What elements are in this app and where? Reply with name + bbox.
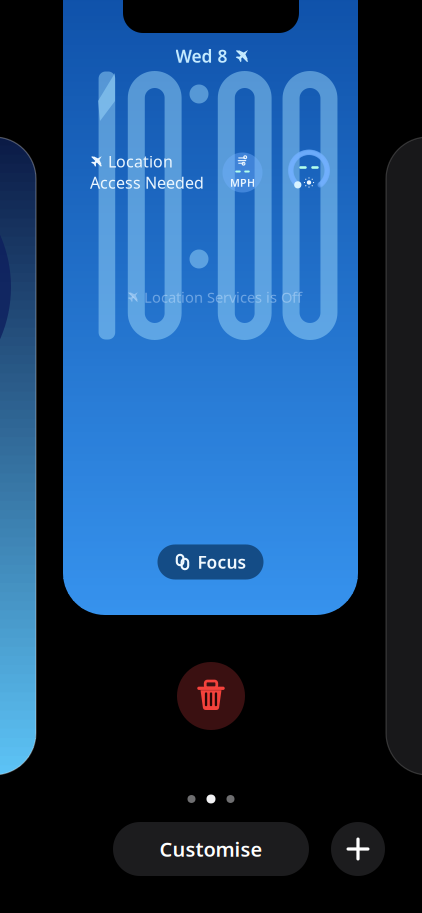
button[interactable]: Add — [331, 822, 385, 876]
staticText: Focus — [197, 550, 246, 573]
staticText: MPH — [230, 175, 255, 190]
staticText: Wed 8 — [175, 44, 227, 67]
staticText: Customise — [159, 836, 262, 862]
staticText: Location — [108, 151, 173, 172]
staticText: Location Services is Off — [144, 287, 302, 307]
button[interactable]: Delete — [177, 662, 245, 730]
button[interactable]: Focus — [157, 544, 263, 579]
staticText: Access Needed — [90, 172, 204, 193]
button[interactable]: Customise — [113, 822, 309, 876]
